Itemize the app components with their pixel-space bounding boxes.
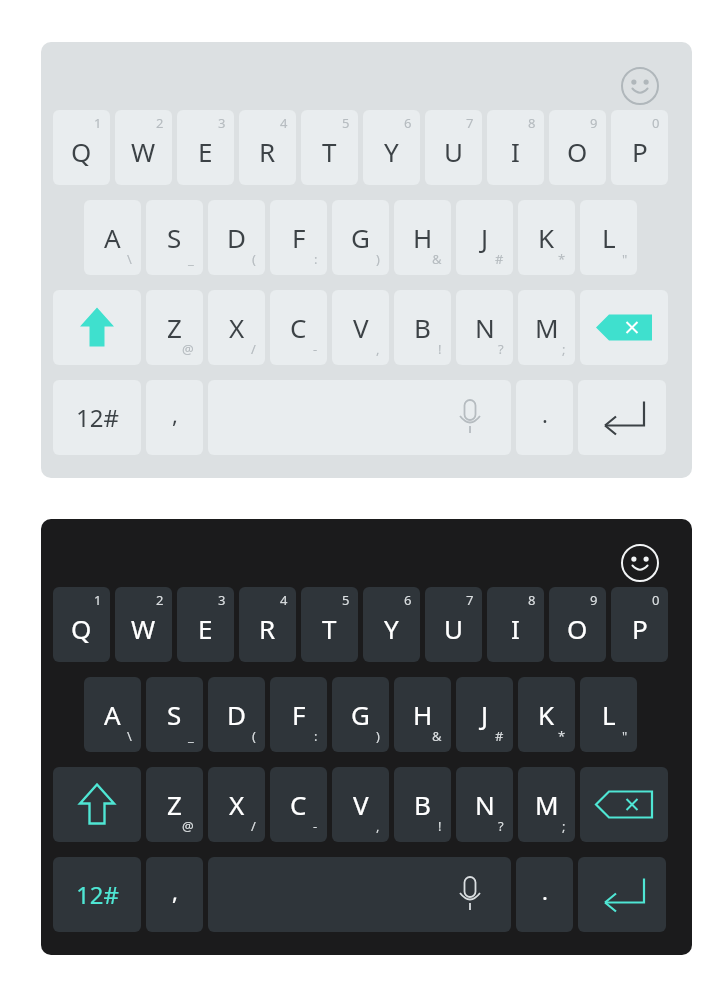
staticText: K — [538, 697, 555, 732]
button[interactable]: A — [84, 677, 141, 752]
button[interactable]: D — [208, 200, 265, 275]
button[interactable]: F — [270, 200, 327, 275]
button[interactable]: . — [516, 857, 573, 932]
button[interactable]: M — [518, 767, 575, 842]
button[interactable]: H — [394, 200, 451, 275]
button[interactable]: Z — [146, 767, 203, 842]
button[interactable]: Q — [53, 110, 110, 185]
button[interactable]: , — [146, 380, 203, 455]
button[interactable]: Enter — [578, 380, 666, 455]
staticText: _ — [188, 250, 194, 268]
button[interactable]: , — [146, 857, 203, 932]
button[interactable]: H — [394, 677, 451, 752]
staticText: A — [104, 697, 121, 732]
button[interactable]: O — [549, 110, 606, 185]
button[interactable]: W — [115, 587, 172, 662]
button[interactable]: N — [456, 290, 513, 365]
button[interactable]: J — [456, 677, 513, 752]
button[interactable]: E — [177, 587, 234, 662]
staticText: S — [167, 220, 182, 255]
button[interactable]: E — [177, 110, 234, 185]
button[interactable]: Y — [363, 587, 420, 662]
button[interactable]: F — [270, 677, 327, 752]
button[interactable]: Emoji — [614, 60, 666, 112]
staticText: @ — [182, 340, 194, 358]
button[interactable]: Emoji — [614, 537, 666, 589]
staticText: P — [632, 134, 648, 169]
button[interactable]: T — [301, 110, 358, 185]
button[interactable]: C — [270, 767, 327, 842]
button[interactable]: K — [518, 677, 575, 752]
button[interactable]: S — [146, 677, 203, 752]
button[interactable]: Shift — [53, 767, 141, 842]
staticText: G — [351, 220, 370, 255]
button[interactable]: W — [115, 110, 172, 185]
staticText: 9 — [590, 114, 598, 132]
button[interactable]: Space — [208, 380, 511, 455]
staticText: U — [444, 134, 464, 169]
staticText: M — [535, 310, 559, 345]
button[interactable]: Q — [53, 587, 110, 662]
staticText: ? — [498, 340, 504, 358]
button[interactable]: I — [487, 110, 544, 185]
button[interactable]: B — [394, 767, 451, 842]
button[interactable]: N — [456, 767, 513, 842]
button[interactable]: X — [208, 767, 265, 842]
button[interactable]: C — [270, 290, 327, 365]
button[interactable]: P — [611, 110, 668, 185]
staticText: H — [413, 220, 433, 255]
staticText: \ — [127, 250, 132, 268]
staticText: S — [167, 697, 182, 732]
button[interactable]: Backspace — [580, 290, 668, 365]
staticText: F — [292, 697, 306, 732]
staticText: X — [229, 310, 245, 345]
button[interactable]: 12# — [53, 380, 141, 455]
button[interactable]: Space — [208, 857, 511, 932]
button[interactable]: Shift — [53, 290, 141, 365]
staticText: B — [414, 310, 431, 345]
button[interactable]: R — [239, 587, 296, 662]
button[interactable]: Z — [146, 290, 203, 365]
staticText: G — [351, 697, 370, 732]
staticText: O — [567, 611, 588, 646]
button[interactable]: . — [516, 380, 573, 455]
staticText: X — [229, 787, 245, 822]
staticText: 5 — [342, 114, 350, 132]
button[interactable]: A — [84, 200, 141, 275]
staticText: J — [481, 697, 489, 732]
button[interactable]: P — [611, 587, 668, 662]
button[interactable]: Y — [363, 110, 420, 185]
button[interactable]: U — [425, 110, 482, 185]
staticText: L — [602, 220, 616, 255]
button[interactable]: L — [580, 200, 637, 275]
button[interactable]: B — [394, 290, 451, 365]
button[interactable]: R — [239, 110, 296, 185]
button[interactable]: 12# — [53, 857, 141, 932]
staticText: F — [292, 220, 306, 255]
button[interactable]: L — [580, 677, 637, 752]
staticText: . — [542, 876, 548, 906]
button[interactable]: X — [208, 290, 265, 365]
button[interactable]: Enter — [578, 857, 666, 932]
staticText: D — [227, 220, 246, 255]
button[interactable]: T — [301, 587, 358, 662]
button[interactable]: U — [425, 587, 482, 662]
staticText: / — [251, 340, 256, 358]
button[interactable]: G — [332, 200, 389, 275]
button[interactable]: V — [332, 767, 389, 842]
button[interactable]: I — [487, 587, 544, 662]
staticText: B — [414, 787, 431, 822]
button[interactable]: V — [332, 290, 389, 365]
button[interactable]: K — [518, 200, 575, 275]
button[interactable]: G — [332, 677, 389, 752]
staticText: 4 — [280, 114, 288, 132]
button[interactable]: J — [456, 200, 513, 275]
button[interactable]: O — [549, 587, 606, 662]
button[interactable]: Backspace — [580, 767, 668, 842]
staticText: E — [198, 611, 213, 646]
staticText: ( — [252, 250, 256, 268]
button[interactable]: S — [146, 200, 203, 275]
staticText: 7 — [466, 114, 474, 132]
button[interactable]: M — [518, 290, 575, 365]
button[interactable]: D — [208, 677, 265, 752]
